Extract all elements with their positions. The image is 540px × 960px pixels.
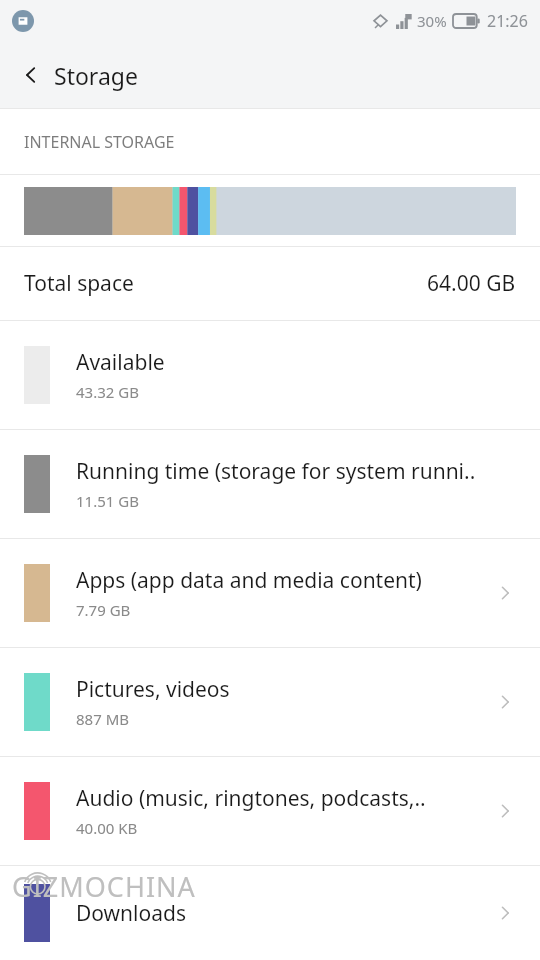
staticText: 40.00 KB bbox=[76, 818, 138, 838]
staticText: 11.51 GB bbox=[76, 491, 139, 511]
staticText: 64.00 GB bbox=[427, 269, 516, 298]
staticText: Storage bbox=[54, 60, 138, 91]
staticText: 7.79 GB bbox=[76, 600, 131, 620]
staticText: 43.32 GB bbox=[76, 382, 139, 402]
button[interactable]: Pictures, videos bbox=[0, 648, 540, 756]
button[interactable]: Running time (storage for system runni.. bbox=[0, 430, 540, 538]
staticText: 30% bbox=[417, 11, 447, 31]
staticText: Apps (app data and media content) bbox=[76, 566, 422, 595]
button[interactable]: Total space bbox=[0, 247, 540, 320]
staticText: Pictures, videos bbox=[76, 675, 230, 704]
staticText: Downloads bbox=[76, 899, 186, 928]
button[interactable]: Apps (app data and media content) bbox=[0, 539, 540, 647]
staticText: INTERNAL STORAGE bbox=[24, 131, 175, 153]
staticText: Audio (music, ringtones, podcasts,.. bbox=[76, 784, 426, 813]
staticText: 887 MB bbox=[76, 709, 129, 729]
staticText: 21:26 bbox=[487, 10, 528, 32]
button[interactable]: Downloads bbox=[0, 866, 540, 960]
button[interactable]: Available bbox=[0, 321, 540, 429]
staticText: GIZMOCHINA bbox=[12, 868, 196, 905]
staticText: Running time (storage for system runni.. bbox=[76, 457, 476, 486]
button[interactable]: Back bbox=[14, 58, 48, 92]
staticText: Available bbox=[76, 348, 165, 377]
staticText: Total space bbox=[24, 269, 134, 298]
button[interactable]: Audio (music, ringtones, podcasts,.. bbox=[0, 757, 540, 865]
